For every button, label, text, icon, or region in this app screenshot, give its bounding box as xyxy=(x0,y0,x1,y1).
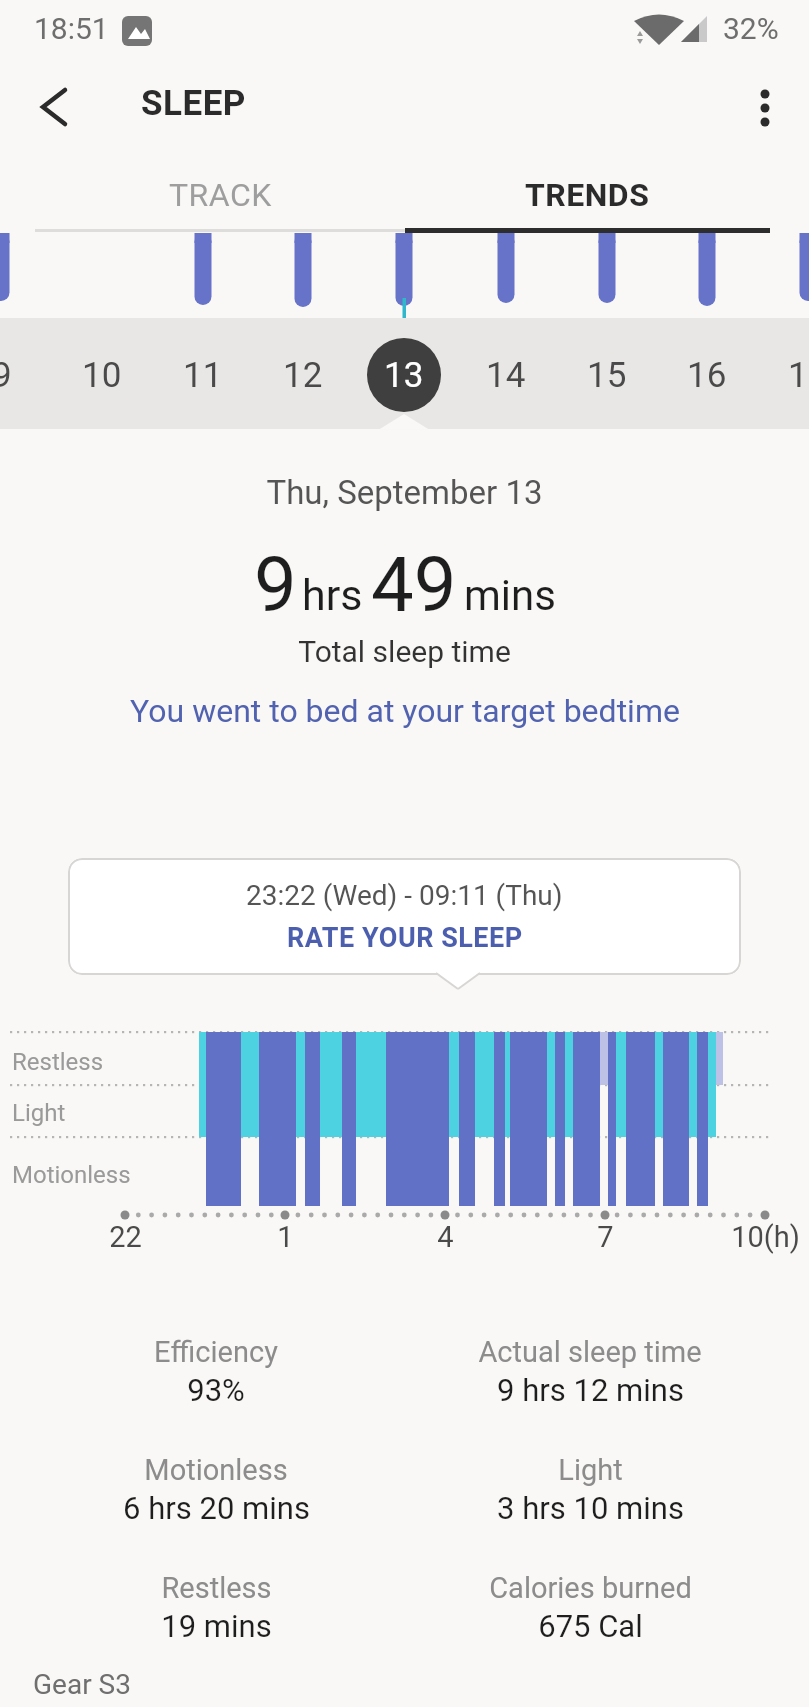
staticText: 7 xyxy=(597,1220,614,1254)
button[interactable]: 9 xyxy=(0,330,52,420)
button[interactable]: 10 xyxy=(52,330,152,420)
staticText: 13 xyxy=(384,355,424,396)
staticText: Gear S3 xyxy=(33,1668,131,1701)
staticText: Light xyxy=(12,1099,66,1127)
staticText: 19 mins xyxy=(161,1608,272,1644)
staticText: 93% xyxy=(187,1372,245,1408)
staticText: 18:51 xyxy=(34,11,109,46)
staticText: RATE YOUR SLEEP xyxy=(287,922,523,954)
button[interactable] xyxy=(740,84,788,132)
staticText: 32% xyxy=(723,11,779,46)
staticText: 4 xyxy=(437,1220,454,1254)
staticText: 11 xyxy=(183,355,223,396)
staticText: 12 xyxy=(283,355,323,396)
button[interactable]: 11 xyxy=(153,330,253,420)
staticText: Efficiency xyxy=(154,1335,278,1369)
button[interactable]: 12 xyxy=(253,330,353,420)
staticText: 16 xyxy=(687,355,727,396)
staticText: Total sleep time xyxy=(298,634,511,669)
staticText: 3 hrs 10 mins xyxy=(497,1490,684,1526)
staticText: 17 xyxy=(788,355,809,396)
staticText: mins xyxy=(464,571,556,620)
staticText: You went to bed at your target bedtime xyxy=(130,692,680,730)
staticText: 10 xyxy=(82,355,122,396)
staticText: 14 xyxy=(486,355,526,396)
staticText: 9 xyxy=(254,540,297,629)
staticText: hrs xyxy=(302,570,363,620)
button[interactable] xyxy=(30,84,78,132)
staticText: 9 xyxy=(0,355,12,396)
staticText: TRACK xyxy=(169,176,272,214)
staticText: Restless xyxy=(161,1571,272,1605)
staticText: SLEEP xyxy=(141,83,246,124)
staticText: Motionless xyxy=(144,1453,288,1487)
staticText: 10(h) xyxy=(731,1220,800,1254)
button[interactable]: TRACK xyxy=(35,162,405,228)
staticText: TRENDS xyxy=(525,176,650,214)
button[interactable]: 23:22 (Wed) - 09:11 (Thu) xyxy=(68,858,741,975)
staticText: Thu, September 13 xyxy=(266,473,543,512)
staticText: 675 Cal xyxy=(538,1608,643,1644)
button[interactable]: 17 xyxy=(758,330,809,420)
staticText: Actual sleep time xyxy=(478,1335,702,1369)
staticText: Calories burned xyxy=(489,1571,692,1605)
staticText: 49 xyxy=(371,540,457,629)
staticText: Motionless xyxy=(12,1161,131,1189)
button[interactable]: TRENDS xyxy=(405,162,770,228)
button[interactable]: 14 xyxy=(456,330,556,420)
staticText: Light xyxy=(558,1453,623,1487)
staticText: 6 hrs 20 mins xyxy=(123,1490,310,1526)
staticText: 15 xyxy=(587,355,627,396)
button[interactable]: 15 xyxy=(557,330,657,420)
staticText: 9 hrs 12 mins xyxy=(497,1372,684,1408)
staticText: 22 xyxy=(109,1220,142,1254)
button[interactable]: 13 xyxy=(367,338,441,412)
staticText: Restless xyxy=(12,1048,104,1076)
staticText: 1 xyxy=(277,1220,294,1254)
staticText: 23:22 (Wed) - 09:11 (Thu) xyxy=(246,879,563,912)
button[interactable]: 16 xyxy=(657,330,757,420)
